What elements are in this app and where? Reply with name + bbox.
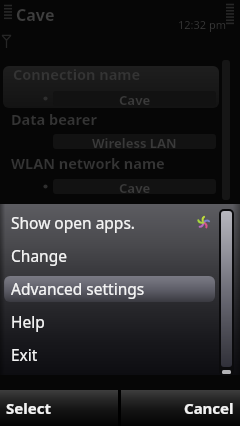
staticText: 12:32 pm [178,17,227,32]
button[interactable]: Exit [0,338,240,371]
button[interactable]: Change [0,239,240,272]
staticText: Help [11,311,45,332]
button[interactable]: Cancel [121,390,240,426]
staticText: Select [6,398,51,418]
staticText: Advanced settings [11,278,145,299]
button[interactable]: Show open apps. [0,206,240,239]
staticText: Show open apps. [11,212,135,233]
staticText: Data bearer [11,109,97,129]
staticText: Cave [16,4,55,26]
staticText: Cave [119,179,151,194]
staticText: Exit [11,344,38,365]
button[interactable]: Help [0,305,240,338]
staticText: Cave [119,91,151,106]
button[interactable]: Advanced settings [0,272,240,305]
staticText: Wireless LAN [92,134,177,149]
staticText: Connection name [13,64,141,84]
staticText: Cancel [184,398,234,418]
staticText: WLAN network name [11,153,165,173]
button[interactable]: Select [0,390,118,426]
staticText: Change [11,245,67,266]
